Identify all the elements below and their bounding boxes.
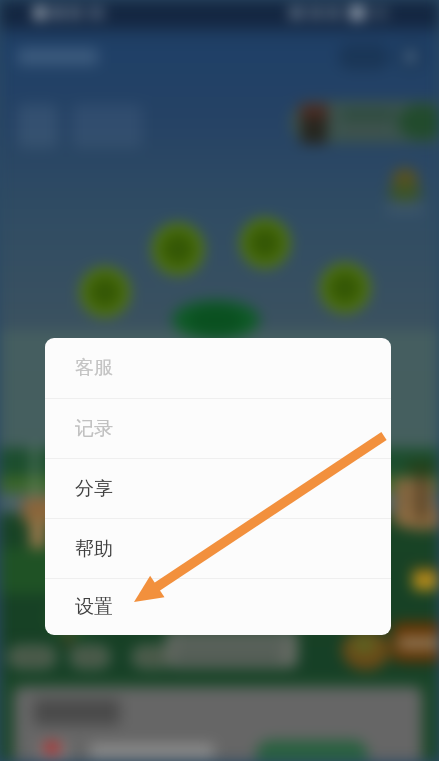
staticText: 分享 (75, 477, 113, 501)
button[interactable]: 帮助 (45, 519, 391, 578)
button[interactable]: 设置 (45, 579, 391, 635)
button[interactable]: 分享 (45, 459, 391, 518)
staticText: 设置 (75, 595, 113, 619)
staticText: 记录 (75, 417, 113, 441)
staticText: 帮助 (75, 537, 113, 561)
button[interactable]: 记录 (45, 399, 391, 458)
staticText: 客服 (75, 356, 113, 380)
button[interactable]: 客服 (45, 338, 391, 398)
